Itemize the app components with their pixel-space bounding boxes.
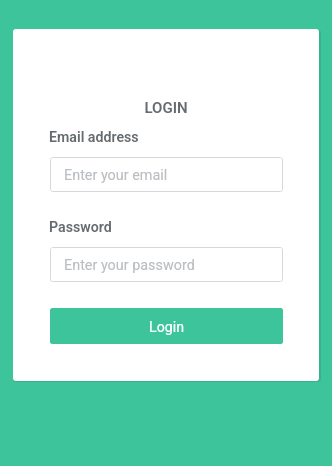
button[interactable]: Login (50, 308, 283, 344)
staticText: Enter your email (64, 167, 168, 184)
staticText: Email address (49, 129, 139, 146)
button[interactable]: Password input (50, 247, 283, 282)
button[interactable]: Email address input (50, 157, 283, 192)
staticText: Password (49, 219, 112, 236)
staticText: Login (149, 319, 184, 336)
staticText: Enter your password (64, 257, 195, 274)
staticText: LOGIN (13, 99, 319, 117)
